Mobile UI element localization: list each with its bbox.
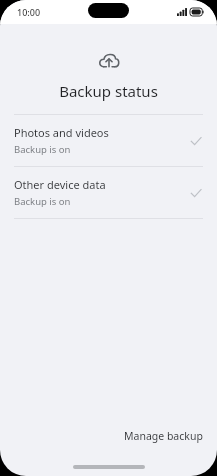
staticText: Backup status [0,81,217,101]
other: Backup on [189,186,203,200]
button[interactable]: Photos and videos [0,115,217,166]
staticText: 10:00 [17,6,41,18]
button[interactable]: Manage backup [110,421,217,451]
other: Backup on [189,134,203,148]
button[interactable]: Other device data [0,167,217,218]
staticText: Manage backup [124,429,203,443]
staticText: Other device data [14,177,106,192]
staticText: Backup is on [14,195,71,208]
staticText: Backup is on [14,143,71,156]
other: Cloud backup [98,52,120,70]
staticText: Photos and videos [14,125,109,140]
